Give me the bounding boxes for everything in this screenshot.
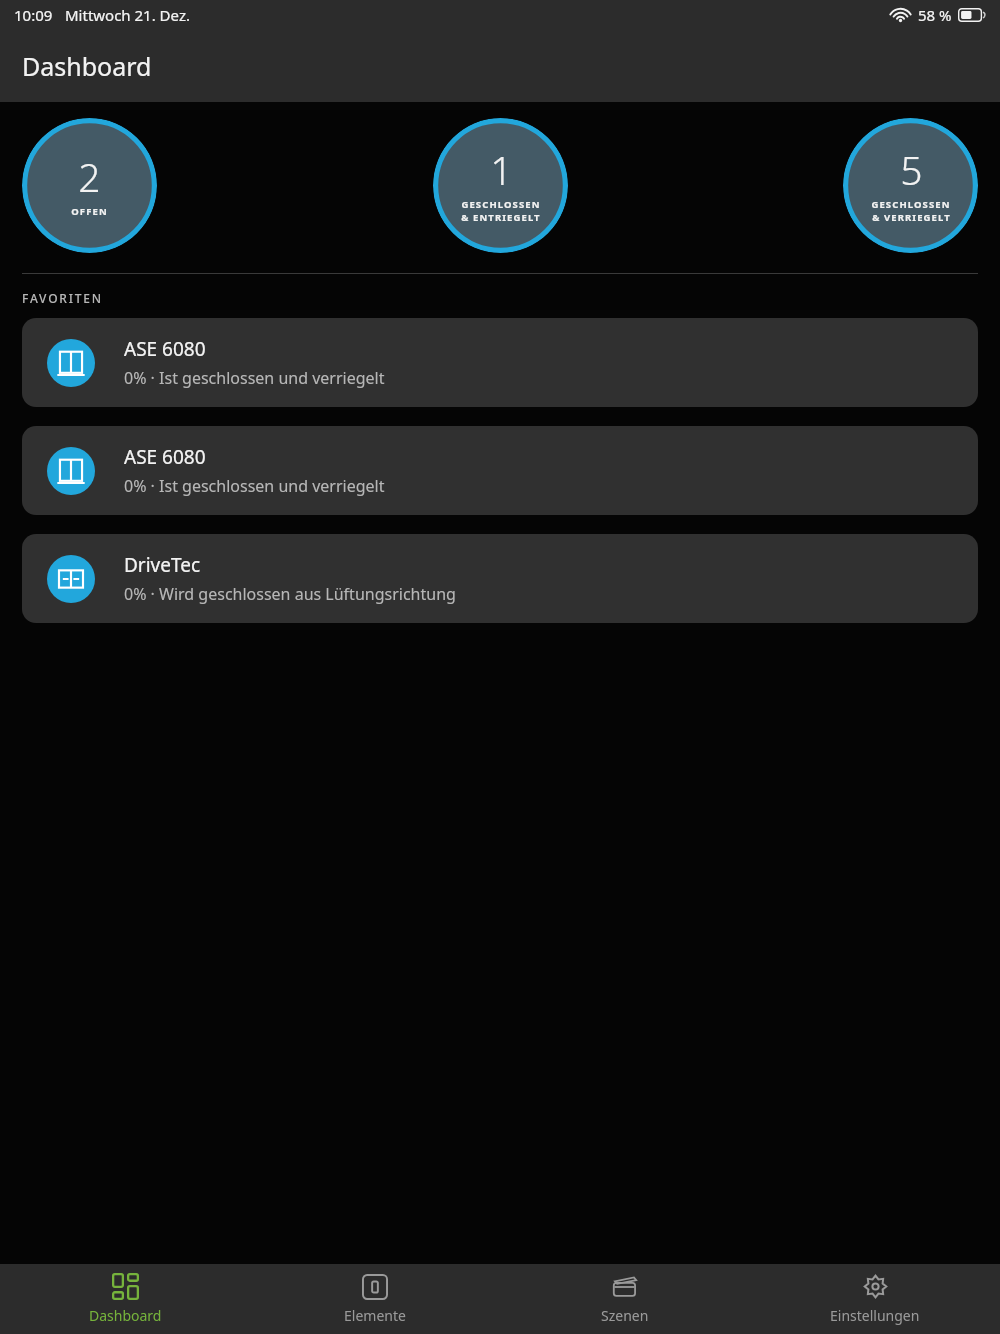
button[interactable]: 2 OFFEN (22, 118, 157, 253)
staticText: ASE 6080 (124, 336, 206, 362)
button[interactable]: ASE 6080 (22, 426, 978, 515)
staticText: ASE 6080 (124, 444, 206, 470)
button[interactable]: ASE 6080 (22, 318, 978, 407)
button[interactable]: Dashboard (0, 1264, 250, 1334)
staticText: & VERRIEGELT (872, 211, 951, 224)
staticText: Einstellungen (830, 1306, 920, 1325)
staticText: 1 (490, 143, 513, 196)
staticText: 10:09 (14, 5, 53, 25)
staticText: 2 (78, 150, 101, 203)
staticText: & ENTRIEGELT (461, 211, 541, 224)
button[interactable]: 1 GESCHLOSSEN & ENTRIEGELT (433, 118, 568, 253)
staticText: 5 (900, 143, 923, 196)
staticText: Dashboard (89, 1306, 162, 1325)
staticText: 0% · Ist geschlossen und verriegelt (124, 475, 385, 497)
staticText: GESCHLOSSEN (871, 198, 951, 211)
staticText: 58 % (918, 5, 952, 25)
staticText: 0% · Ist geschlossen und verriegelt (124, 367, 385, 389)
staticText: Szenen (601, 1306, 649, 1325)
staticText: Elemente (344, 1306, 406, 1325)
button[interactable]: Einstellungen (750, 1264, 1000, 1334)
staticText: GESCHLOSSEN (461, 198, 541, 211)
staticText: DriveTec (124, 552, 201, 578)
button[interactable]: 5 GESCHLOSSEN & VERRIEGELT (843, 118, 978, 253)
staticText: OFFEN (71, 205, 108, 218)
staticText: 0% · Wird geschlossen aus Lüftungsrichtu… (124, 583, 456, 605)
staticText: FAVORITEN (22, 290, 103, 306)
staticText: Dashboard (22, 49, 152, 83)
button[interactable]: DriveTec (22, 534, 978, 623)
button[interactable]: Elemente (250, 1264, 500, 1334)
button[interactable]: Szenen (500, 1264, 750, 1334)
staticText: Mittwoch 21. Dez. (65, 5, 190, 25)
